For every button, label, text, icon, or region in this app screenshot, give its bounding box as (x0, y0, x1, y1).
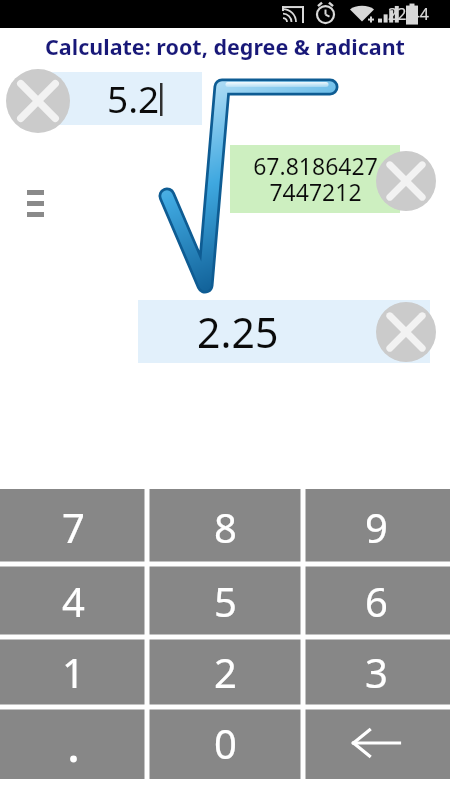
button[interactable]: Clear degree (6, 69, 70, 133)
button[interactable]: 2.25 (138, 300, 430, 363)
staticText: 3 (365, 645, 388, 699)
button[interactable]: 3 (303, 637, 450, 707)
button[interactable] (0, 707, 147, 779)
staticText: 4 (62, 574, 85, 628)
staticText: 0 (214, 716, 237, 770)
button[interactable]: 6 (303, 564, 450, 637)
staticText: 6 (365, 574, 388, 628)
button[interactable]: Backspace (303, 707, 450, 779)
staticText: 8 (214, 500, 237, 554)
button[interactable]: 5.2 (42, 72, 202, 125)
button[interactable]: 8 (147, 489, 303, 564)
button[interactable]: 0 (147, 707, 303, 779)
button[interactable]: 7 (0, 489, 147, 564)
button[interactable]: Calculate: root, degree & radicant (0, 31, 450, 61)
button[interactable]: Clear radicand (376, 151, 436, 211)
button[interactable]: 2 (147, 637, 303, 707)
staticText: 7 (62, 500, 85, 554)
staticText: 9 (365, 500, 388, 554)
staticText: Calculate: root, degree & radicant (45, 32, 405, 61)
staticText: 22:44 (388, 3, 429, 25)
staticText: 1 (62, 645, 85, 699)
button[interactable]: 1 (0, 637, 147, 707)
staticText: 67.8186427 7447212 (253, 150, 378, 208)
button[interactable]: 67.8186427 7447212 (230, 145, 400, 213)
button[interactable]: 5 (147, 564, 303, 637)
staticText: 2.25 (197, 304, 279, 360)
button[interactable]: 9 (303, 489, 450, 564)
staticText: 5 (214, 574, 237, 628)
button[interactable]: Menu (18, 180, 54, 222)
button[interactable]: 4 (0, 564, 147, 637)
staticText: 5.2 (107, 73, 160, 123)
button[interactable]: Clear result (376, 302, 436, 362)
staticText: 2 (214, 645, 237, 699)
